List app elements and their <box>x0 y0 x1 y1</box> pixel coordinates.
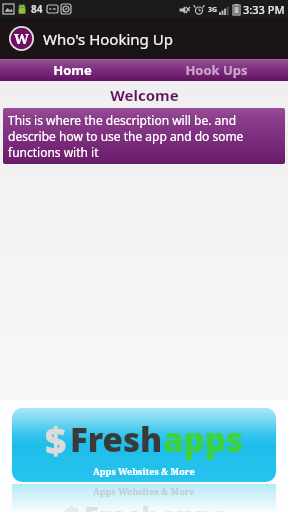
staticText: apps <box>163 417 244 462</box>
staticText: 3G <box>208 5 218 15</box>
staticText: apps <box>160 497 226 512</box>
staticText: Who's Hooking Up <box>43 29 173 49</box>
button[interactable]: This is where the description will be. a… <box>3 108 285 164</box>
staticText: Welcome <box>110 85 179 105</box>
staticText: This is where the description will be. a… <box>8 112 280 160</box>
staticText: Apps Websites & More <box>93 485 195 497</box>
staticText: 3:33 PM <box>243 2 285 17</box>
staticText: Fresh <box>84 497 160 512</box>
staticText: Home <box>53 61 92 79</box>
button[interactable]: Freshapps advertisement <box>0 400 288 512</box>
button[interactable]: App logo <box>9 26 34 51</box>
staticText: $ <box>63 497 81 512</box>
staticText: W <box>14 29 29 48</box>
staticText: Hook Ups <box>185 61 248 79</box>
staticText: $ <box>45 414 67 464</box>
button[interactable]: Home <box>0 59 144 81</box>
staticText: Apps Websites & More <box>93 465 195 477</box>
staticText: 84 <box>31 2 43 16</box>
staticText: Fresh <box>70 417 163 462</box>
button[interactable]: Hook Ups <box>144 59 288 81</box>
